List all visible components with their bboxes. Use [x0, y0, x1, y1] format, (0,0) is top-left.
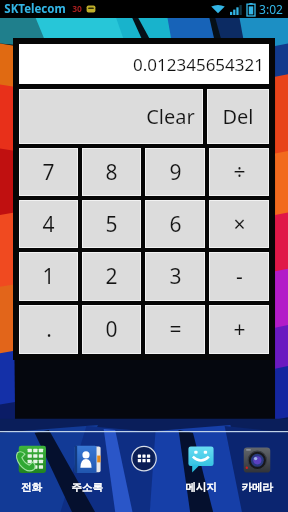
staticText: 카메라 — [241, 481, 273, 494]
staticText: SKTelecom — [4, 1, 66, 17]
button[interactable]: Del — [208, 90, 268, 143]
staticText: 9 — [169, 158, 182, 187]
button[interactable]: 8 — [83, 149, 140, 195]
button[interactable]: 5 — [83, 201, 140, 247]
button[interactable]: 4 — [20, 201, 77, 247]
staticText: - — [236, 262, 243, 291]
button[interactable]: 0 — [83, 306, 140, 353]
button[interactable]: 6 — [146, 201, 204, 247]
staticText: 전화 — [21, 481, 42, 494]
staticText: 7 — [42, 158, 55, 187]
staticText: . — [46, 315, 52, 344]
staticText: 0 — [105, 315, 118, 344]
staticText: 5 — [105, 210, 118, 239]
button[interactable]: 3 — [146, 253, 204, 300]
staticText: 2 — [105, 262, 118, 291]
staticText: Clear — [146, 103, 195, 130]
staticText: = — [169, 315, 182, 344]
button[interactable]: 9 — [146, 149, 204, 195]
staticText: ÷ — [233, 158, 246, 187]
staticText: 3 — [169, 262, 182, 291]
staticText: Del — [222, 103, 254, 130]
button[interactable]: - — [210, 253, 268, 300]
button[interactable]: ÷ — [210, 149, 268, 195]
staticText: 메시지 — [185, 481, 217, 494]
staticText: × — [233, 210, 246, 239]
button[interactable]: Phone — [5, 444, 57, 494]
staticText: 8 — [105, 158, 118, 187]
staticText: 0.012345654321 — [133, 53, 264, 76]
button[interactable]: Messages — [175, 444, 227, 494]
staticText: 4 — [42, 210, 55, 239]
button[interactable]: Contacts — [61, 444, 113, 494]
button[interactable]: . — [20, 306, 77, 353]
button[interactable]: = — [146, 306, 204, 353]
staticText: 30 — [72, 3, 82, 15]
button[interactable]: 7 — [20, 149, 77, 195]
staticText: 주소록 — [71, 481, 103, 494]
button[interactable]: Camera — [231, 444, 283, 494]
staticText: 6 — [169, 210, 182, 239]
button[interactable]: Apps — [118, 444, 170, 478]
staticText: 1 — [42, 262, 55, 291]
button[interactable]: + — [210, 306, 268, 353]
button[interactable]: 2 — [83, 253, 140, 300]
staticText: 3:02 — [259, 1, 283, 17]
staticText: + — [233, 315, 246, 344]
button[interactable]: 1 — [20, 253, 77, 300]
button[interactable]: × — [210, 201, 268, 247]
button[interactable]: Clear — [20, 90, 202, 143]
